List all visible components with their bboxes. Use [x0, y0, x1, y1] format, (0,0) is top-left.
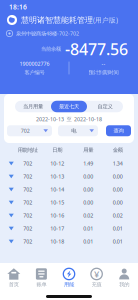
staticText: 至	[66, 116, 71, 123]
staticText: 用能	[64, 281, 74, 288]
staticText: 702	[23, 186, 32, 193]
staticText: 0.02	[83, 212, 93, 219]
staticText: 1.34	[113, 160, 123, 167]
button[interactable]: 自定义	[87, 101, 123, 112]
staticText: 0.00	[113, 199, 123, 206]
staticText: 慧明诸智慧能耗管理	[21, 15, 93, 25]
staticText: 泉州中骏商场48楼-702-702	[16, 30, 79, 37]
button[interactable]: 当月用量	[15, 101, 51, 112]
staticText: 0.02	[113, 212, 123, 219]
button[interactable]: 用能	[55, 264, 83, 291]
staticText: --	[101, 60, 105, 67]
staticText: ¥	[94, 268, 99, 280]
staticText: -8477.56	[65, 38, 128, 60]
staticText: 702	[23, 199, 32, 206]
staticText: 0.01	[83, 238, 93, 245]
staticText: 1.49	[83, 160, 93, 167]
staticText: 10-13	[50, 173, 64, 180]
staticText: 电	[71, 127, 76, 134]
staticText: 用能地址	[18, 147, 38, 153]
staticText: 18:16	[9, 3, 27, 11]
button[interactable]: 最近七天	[51, 101, 87, 112]
staticText: 首页	[9, 281, 19, 288]
staticText: 10-17	[50, 225, 64, 232]
staticText: 客户编号	[24, 69, 44, 76]
staticText: 2022-10-18	[74, 116, 102, 123]
staticText: 1900002776	[19, 60, 49, 67]
staticText: 0.00	[83, 173, 93, 180]
staticText: 702	[23, 160, 32, 167]
staticText: 最近七天	[59, 103, 79, 110]
staticText: 0.01	[113, 238, 123, 245]
staticText: 金额	[113, 147, 123, 153]
staticText: 10-16	[50, 212, 64, 219]
staticText: 自定义	[97, 103, 112, 110]
button[interactable]: ¥	[83, 264, 110, 291]
staticText: 我的	[119, 281, 129, 288]
button[interactable]: 账单	[28, 264, 55, 291]
staticText: 0.01	[113, 225, 123, 232]
staticText: 10-14	[50, 186, 64, 193]
staticText: 0.01	[83, 225, 93, 232]
staticText: 0.00	[113, 173, 123, 180]
staticText: 充值	[92, 281, 102, 288]
staticText: 10-15	[50, 199, 64, 206]
staticText: 702	[23, 238, 32, 245]
button[interactable]: 702	[7, 125, 52, 136]
staticText: 702	[23, 173, 32, 180]
staticText: 查询	[113, 127, 123, 134]
staticText: 10-12	[50, 160, 64, 167]
staticText: 10-18	[50, 238, 64, 245]
staticText: 预计到期时间	[88, 69, 118, 76]
staticText: 0.00	[83, 186, 93, 193]
staticText: 账单	[36, 281, 46, 288]
staticText: 0.00	[113, 186, 123, 193]
staticText: 当前余额	[41, 46, 61, 52]
staticText: 2022-10-13	[36, 116, 64, 123]
staticText: 当月用量	[23, 103, 43, 110]
staticText: 702	[23, 212, 32, 219]
staticText: 702	[23, 225, 32, 232]
button[interactable]: 电	[58, 125, 98, 136]
staticText: 702	[21, 127, 30, 134]
button[interactable]: 查询	[106, 125, 131, 136]
staticText: (用户版)	[93, 16, 118, 24]
staticText: 日期	[52, 147, 62, 153]
staticText: 0.00	[83, 199, 93, 206]
staticText: 用量	[83, 147, 93, 153]
button[interactable]: 我的	[110, 264, 138, 291]
button[interactable]: 首页	[0, 264, 28, 291]
